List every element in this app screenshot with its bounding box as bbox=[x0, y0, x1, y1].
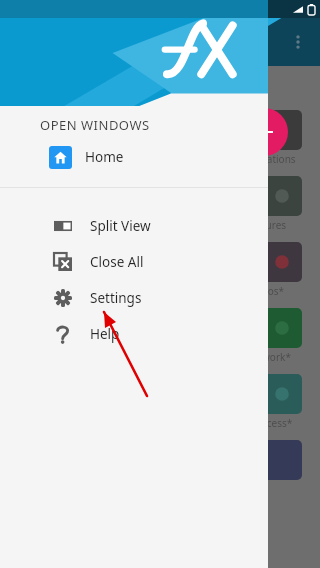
staticText: eos* bbox=[262, 284, 284, 298]
button[interactable] bbox=[262, 440, 302, 480]
button[interactable]: Split View bbox=[0, 208, 268, 244]
staticText: Close All bbox=[90, 253, 144, 271]
staticText: Split View bbox=[90, 217, 151, 235]
button[interactable] bbox=[262, 176, 302, 216]
button[interactable] bbox=[262, 374, 302, 414]
button[interactable]: Home bbox=[0, 138, 268, 176]
button[interactable] bbox=[262, 242, 302, 282]
button[interactable]: Search bbox=[238, 22, 278, 62]
button[interactable]: Help bbox=[0, 316, 268, 352]
staticText: Settings bbox=[90, 289, 142, 307]
staticText: Help bbox=[90, 325, 120, 343]
button[interactable]: Settings bbox=[0, 280, 268, 316]
staticText: Home bbox=[85, 148, 124, 166]
button[interactable] bbox=[262, 308, 302, 348]
button[interactable]: Close All bbox=[0, 244, 268, 280]
staticText: tures bbox=[262, 218, 287, 232]
staticText: work* bbox=[262, 350, 291, 364]
staticText: OPEN WINDOWS bbox=[40, 116, 150, 134]
button[interactable]: Add bbox=[240, 108, 288, 156]
button[interactable]: More options bbox=[278, 22, 318, 62]
staticText: ccess* bbox=[262, 416, 293, 430]
button[interactable] bbox=[262, 110, 302, 150]
staticText: cations bbox=[262, 152, 296, 166]
